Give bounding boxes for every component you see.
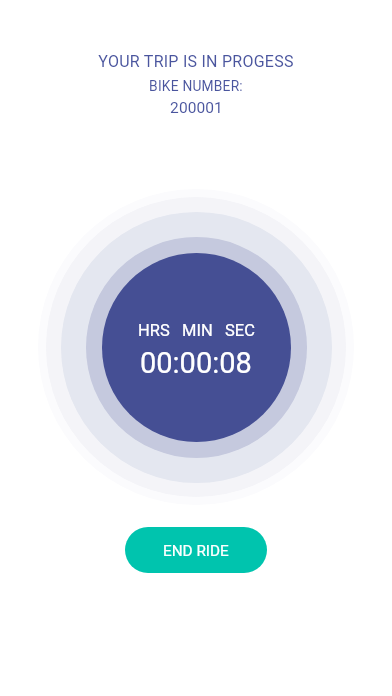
staticText: 00:00:08: [140, 346, 252, 380]
button[interactable]: END RIDE: [125, 527, 267, 573]
staticText: 200001: [170, 99, 223, 117]
staticText: END RIDE: [163, 542, 229, 560]
staticText: YOUR TRIP IS IN PROGESS: [98, 52, 294, 71]
staticText: HRS MIN SEC: [138, 321, 255, 340]
staticText: BIKE NUMBER:: [149, 78, 243, 94]
